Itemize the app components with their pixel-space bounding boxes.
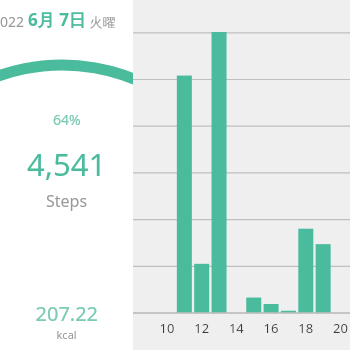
- button[interactable]: Daily steps activity: [0, 0, 350, 350]
